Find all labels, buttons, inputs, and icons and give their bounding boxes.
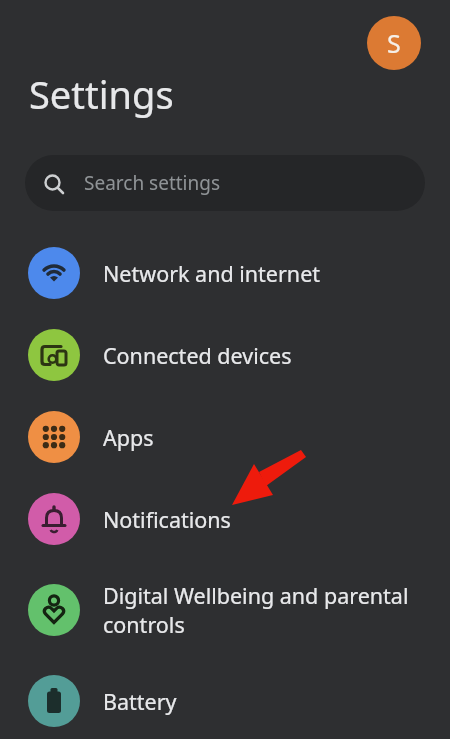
- button[interactable]: Apps: [0, 396, 450, 478]
- button[interactable]: Notifications: [0, 478, 450, 560]
- button[interactable]: Connected devices: [0, 314, 450, 396]
- button[interactable]: Digital Wellbeing and parental controls: [0, 560, 450, 660]
- staticText: Apps: [103, 423, 154, 452]
- staticText: S: [387, 26, 401, 60]
- staticText: Notifications: [103, 505, 231, 534]
- staticText: Search settings: [84, 170, 221, 196]
- staticText: Network and internet: [103, 259, 321, 288]
- button[interactable]: S: [367, 16, 421, 70]
- button[interactable]: Battery: [0, 660, 450, 739]
- button[interactable]: Network and internet: [0, 232, 450, 314]
- staticText: Settings: [29, 68, 174, 120]
- button[interactable]: Search settings: [25, 155, 425, 211]
- staticText: Connected devices: [103, 341, 292, 370]
- staticText: Digital Wellbeing and parental controls: [103, 581, 409, 639]
- staticText: Battery: [103, 687, 177, 716]
